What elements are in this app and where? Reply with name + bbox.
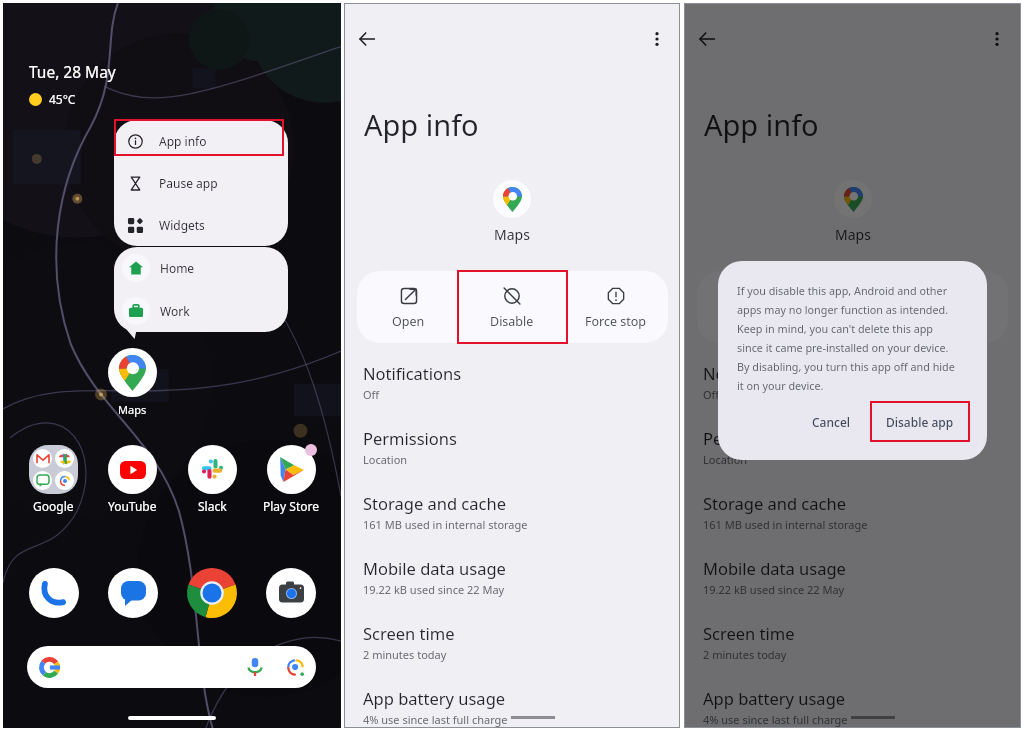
staticText: Disable app [886,414,954,430]
staticText: Screen time [363,622,455,644]
staticText: App battery usage [703,687,846,709]
button[interactable]: Camera [266,568,316,618]
staticText: Slack [198,498,227,514]
staticText: Permissions [363,427,457,449]
button[interactable]: App battery usage [344,687,680,730]
staticText: YouTube [108,498,157,514]
button[interactable]: Storage and cache [684,492,1021,557]
staticText: Open [392,313,425,330]
staticText: 2 minutes today [363,647,447,662]
button[interactable]: Screen time [684,622,1021,687]
button[interactable]: Chrome [187,568,237,618]
button[interactable]: Messages [108,568,158,618]
button[interactable]: Slack [173,445,251,514]
staticText: Off [703,387,720,402]
staticText: Maps [118,402,147,417]
staticText: Tue, 28 May [29,61,116,82]
button[interactable]: Mobile data usage [684,557,1021,622]
staticText: Location [363,452,408,467]
button[interactable]: More options [644,26,670,52]
staticText: Play Store [263,498,319,514]
staticText: App info [704,105,819,144]
button[interactable]: Permissions [684,427,1021,492]
button[interactable]: Storage and cache [344,492,680,557]
button[interactable]: Disable [800,271,904,343]
button[interactable]: More options [984,26,1010,52]
staticText: 4% use since last full charge [363,712,508,727]
staticText: 161 MB used in internal storage [703,517,868,532]
button[interactable]: Home [114,247,288,289]
staticText: 2 minutes today [703,647,787,662]
button[interactable]: Disable app [870,401,970,442]
staticText: Home [160,260,195,276]
button[interactable]: Open [357,271,460,343]
staticText: Mobile data usage [363,557,506,579]
button[interactable]: Disable [460,271,564,343]
button[interactable]: Widgets [114,204,288,246]
staticText: 4% use since last full charge [703,712,848,727]
staticText: Disable [830,313,874,330]
staticText: 19.22 kB used since 22 May [703,582,845,597]
staticText: Storage and cache [703,492,846,514]
staticText: 19.22 kB used since 22 May [363,582,505,597]
button[interactable]: Mobile data usage [344,557,680,622]
button[interactable]: YouTube [93,445,171,514]
button[interactable]: Permissions [344,427,680,492]
staticText: Pause app [159,175,218,191]
staticText: Notifications [703,362,802,384]
staticText: Location [703,452,748,467]
staticText: Work [160,303,190,319]
button[interactable]: Screen time [344,622,680,687]
button[interactable]: Back [354,26,380,52]
button[interactable]: Notifications [344,362,680,427]
staticText: Storage and cache [363,492,506,514]
staticText: Cancel [812,414,851,430]
button[interactable]: App info [114,120,288,162]
button[interactable]: Work [114,289,288,332]
staticText: Force stop [925,313,987,330]
staticText: Maps [494,225,530,244]
button[interactable]: Pause app [114,162,288,204]
staticText: App info [364,105,479,144]
staticText: Force stop [585,313,647,330]
button[interactable]: Notifications [684,362,1021,427]
staticText: App info [159,133,207,149]
button[interactable]: Force stop [904,271,1008,343]
staticText: Widgets [159,217,205,233]
staticText: 45°C [49,91,76,107]
button[interactable]: App battery usage [684,687,1021,730]
staticText: Notifications [363,362,462,384]
staticText: Mobile data usage [703,557,846,579]
staticText: Off [363,387,380,402]
button[interactable]: Google [14,445,92,514]
staticText: Screen time [703,622,795,644]
button[interactable]: Cancel [802,406,861,438]
button[interactable]: Force stop [564,271,668,343]
staticText: App battery usage [363,687,506,709]
button[interactable]: Open [697,271,800,343]
staticText: 161 MB used in internal storage [363,517,528,532]
staticText: Google [33,498,74,514]
button[interactable]: Back [694,26,720,52]
staticText: Maps [835,225,871,244]
staticText: Open [732,313,765,330]
staticText: Disable [490,313,534,330]
staticText: Permissions [703,427,797,449]
button[interactable] [27,646,316,688]
staticText: If you disable this app, Android and oth… [737,283,955,393]
button[interactable]: Phone [29,568,79,618]
button[interactable]: Play Store [252,445,330,514]
